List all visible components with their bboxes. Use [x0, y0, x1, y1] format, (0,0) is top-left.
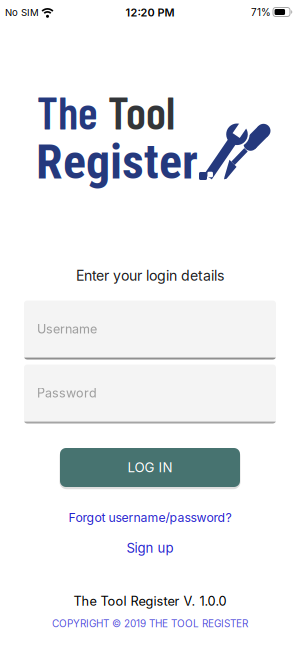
staticText: Sign up [126, 540, 173, 556]
button[interactable]: Username [24, 300, 276, 359]
staticText: The Tool Register V. 1.0.0 [73, 593, 226, 609]
staticText: No SIM [5, 7, 39, 18]
staticText: Password [37, 385, 97, 401]
staticText: The [37, 83, 98, 139]
staticText: 71% [251, 6, 271, 18]
button[interactable]: LOG IN [60, 448, 240, 487]
staticText: LOG IN [127, 459, 172, 475]
button[interactable]: Password [24, 364, 276, 423]
staticText: 12:20 PM [125, 6, 174, 19]
staticText: Enter your login details [76, 267, 224, 284]
staticText: COPYRIGHT © 2019 THE TOOL REGISTER [52, 617, 248, 630]
staticText: Register [36, 134, 198, 190]
staticText: Forgot username/password? [68, 510, 231, 525]
staticText: Username [37, 321, 97, 337]
staticText: Tool [108, 83, 175, 139]
button[interactable]: Sign up [126, 540, 173, 556]
button[interactable]: Forgot username/password? [68, 510, 231, 525]
